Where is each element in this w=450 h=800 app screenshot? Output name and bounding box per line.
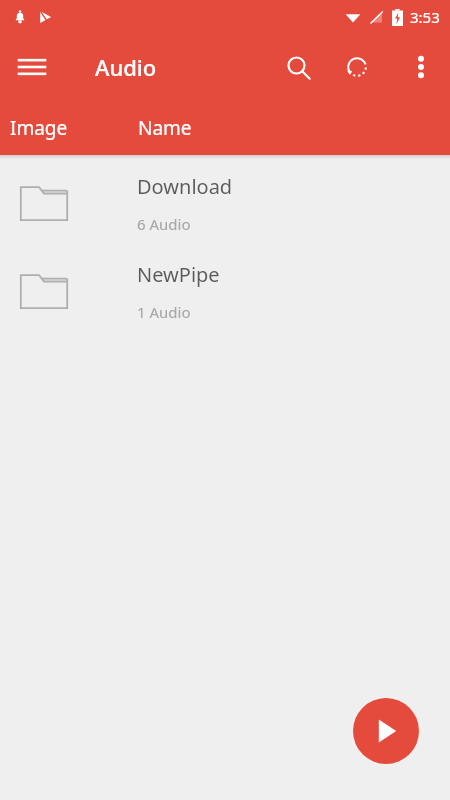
button[interactable]: Play bbox=[353, 698, 419, 764]
button[interactable]: Refresh bbox=[334, 44, 380, 90]
staticText: Name bbox=[138, 115, 192, 141]
staticText: Image bbox=[10, 115, 68, 141]
button[interactable]: Open navigation menu bbox=[8, 43, 56, 91]
button[interactable]: NewPipe bbox=[0, 247, 450, 335]
button[interactable]: More options bbox=[398, 44, 444, 90]
button[interactable]: Image bbox=[0, 100, 128, 155]
staticText: 6 Audio bbox=[137, 214, 191, 234]
staticText: 3:53 bbox=[410, 7, 440, 27]
staticText: NewPipe bbox=[137, 261, 220, 288]
staticText: Audio bbox=[95, 52, 157, 82]
button[interactable]: Download bbox=[0, 159, 450, 247]
button[interactable]: Search bbox=[275, 44, 321, 90]
staticText: Download bbox=[137, 173, 233, 200]
button[interactable]: Name bbox=[128, 100, 278, 155]
staticText: 1 Audio bbox=[137, 302, 191, 322]
